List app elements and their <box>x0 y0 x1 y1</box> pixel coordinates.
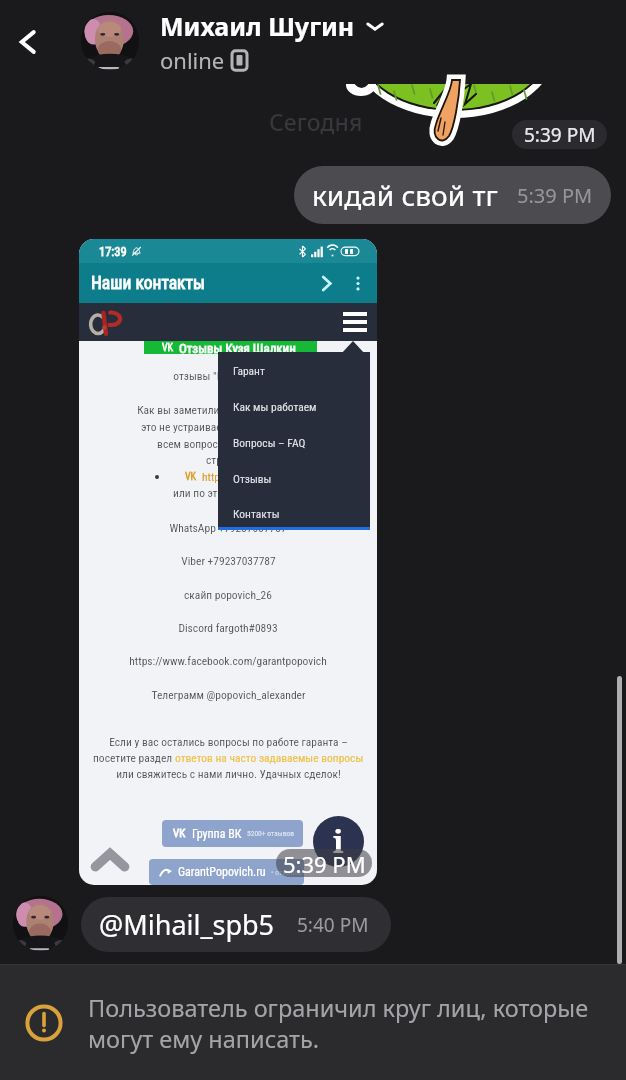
button[interactable]: Info <box>313 816 364 867</box>
staticText: Контакты <box>233 507 280 520</box>
button[interactable]: Menu <box>342 309 368 335</box>
staticText: 5:39 PM <box>517 182 593 209</box>
staticText: посетите раздел <box>93 751 175 764</box>
button[interactable]: Как мы работаем <box>218 388 370 424</box>
staticText: или свяжитесь с нами лично. Удачных сдел… <box>116 767 341 780</box>
staticText: WhatsApp +79237037787 <box>169 521 287 534</box>
button[interactable]: VK <box>162 820 303 847</box>
staticText: VK <box>185 471 197 483</box>
button[interactable]: Scroll to top <box>93 845 127 878</box>
staticText: https://www.facebook.com/garantpopovich <box>129 654 327 667</box>
staticText: • отзывов <box>271 868 302 877</box>
button[interactable]: Отзывы <box>218 460 370 496</box>
button[interactable]: 17:39 <box>79 239 377 885</box>
staticText: 17:39 <box>99 244 127 259</box>
staticText: Группа ВК <box>192 827 242 841</box>
staticText: Телеграмм @popovich_alexander <box>151 688 306 701</box>
staticText: https://vk.com/garant <box>202 470 302 483</box>
button[interactable]: Вопросы – FAQ <box>218 424 370 460</box>
button[interactable]: Forward <box>315 272 337 294</box>
button[interactable]: кидай свой тг <box>294 166 611 224</box>
staticText: Как мы работаем <box>233 400 317 413</box>
staticText: 5:39 PM <box>283 849 366 877</box>
button[interactable]: Options <box>351 272 365 294</box>
button[interactable]: VK <box>144 341 317 354</box>
staticText: ответов на часто задаваемые вопросы <box>175 751 364 764</box>
staticText: кидай свой тг <box>312 176 498 214</box>
staticText: 5200+ отзывов <box>247 829 294 838</box>
staticText: 5:39 PM <box>524 122 596 148</box>
staticText: Сегодня <box>269 106 363 137</box>
button[interactable]: GarantPopovich.ru <box>149 859 304 885</box>
staticText: VK <box>162 342 174 354</box>
staticText: VK <box>173 827 186 840</box>
staticText: Наши контакты <box>91 273 205 294</box>
staticText: Как вы заметили вк очень часто блок <box>137 403 319 416</box>
staticText: @Mihail_spb5 <box>99 906 275 943</box>
staticText: Если у вас остались вопросы по работе га… <box>109 735 348 748</box>
button[interactable]: Гарант <box>218 352 370 388</box>
staticText: всем вопросам провели боль <box>157 437 299 450</box>
staticText: Гарант <box>233 364 265 377</box>
button[interactable]: More info <box>365 16 385 36</box>
staticText: Пользователь ограничил круг лиц, которые… <box>88 992 589 1054</box>
button[interactable]: Пользователь ограничил круг лиц, которые… <box>0 965 626 1080</box>
staticText: 5:40 PM <box>297 912 369 938</box>
button[interactable]: @Mihail_spb5 <box>81 897 391 952</box>
staticText: это не устраивает, в том числе и нас <box>141 420 316 433</box>
button[interactable]: Sticker <box>342 84 552 152</box>
button[interactable]: Back <box>0 14 56 70</box>
staticText: Вопросы – FAQ <box>233 436 306 449</box>
staticText: Viber +79237037787 <box>181 554 276 567</box>
staticText: Михаил Шугин <box>160 9 355 43</box>
staticText: Discord fargoth#0893 <box>178 621 278 634</box>
button[interactable]: Контакты <box>218 496 370 530</box>
staticText: или по этим контактам <box>173 486 284 499</box>
staticText: Отзывы <box>233 472 272 485</box>
staticText: online <box>160 45 225 75</box>
staticText: скайп popovich_26 <box>184 588 272 601</box>
staticText: отзывы "Кузя Шалкин" <box>173 369 283 382</box>
staticText: страницу <box>206 453 250 466</box>
staticText: i <box>333 821 344 862</box>
staticText: Отзывы Кузя Шалкин <box>179 341 296 354</box>
staticText: GarantPopovich.ru <box>178 865 266 879</box>
